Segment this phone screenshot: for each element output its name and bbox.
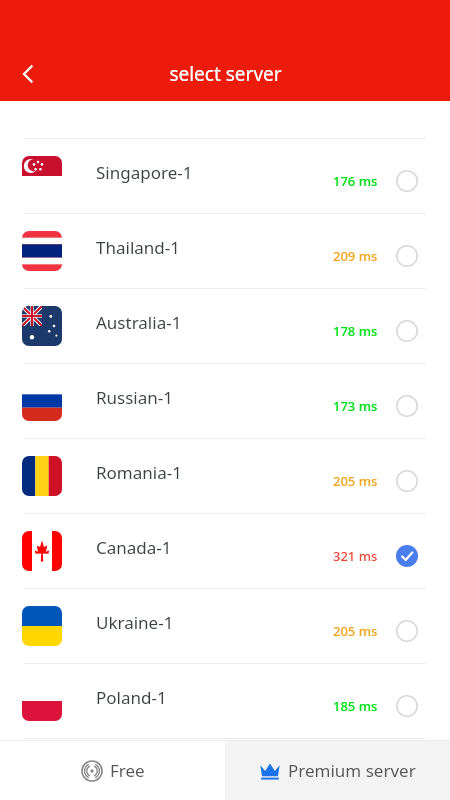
button[interactable]: Ukraine-1 bbox=[0, 589, 450, 663]
button[interactable]: Thailand-1 bbox=[0, 214, 450, 288]
staticText: Canada-1 bbox=[96, 536, 172, 559]
staticText: 321 ms bbox=[333, 547, 378, 565]
staticText: Free bbox=[110, 759, 145, 782]
staticText: select server bbox=[169, 61, 282, 87]
staticText: Thailand-1 bbox=[96, 236, 180, 259]
button[interactable]: Romania-1 bbox=[0, 439, 450, 513]
staticText: 176 ms bbox=[333, 172, 378, 190]
button[interactable]: Select Singapore-1 bbox=[390, 164, 424, 198]
staticText: Ukraine-1 bbox=[96, 611, 174, 634]
staticText: 209 ms bbox=[333, 247, 378, 265]
staticText: Singapore-1 bbox=[96, 161, 193, 184]
staticText: Romania-1 bbox=[96, 461, 182, 484]
button[interactable]: Select Russian-1 bbox=[390, 389, 424, 423]
button[interactable]: Select Korea-1 bbox=[390, 71, 424, 105]
staticText: 185 ms bbox=[333, 697, 378, 715]
staticText: Russian-1 bbox=[96, 386, 173, 409]
staticText: 178 ms bbox=[333, 322, 378, 340]
button[interactable]: Select Poland-1 bbox=[390, 689, 424, 723]
button[interactable]: Poland-1 bbox=[0, 664, 450, 738]
staticText: 173 ms bbox=[333, 397, 378, 415]
button[interactable]: Canada-1 bbox=[0, 514, 450, 588]
button[interactable]: Russian-1 bbox=[0, 364, 450, 438]
button[interactable]: Select Romania-1 bbox=[390, 464, 424, 498]
button[interactable]: Select Australia-1 bbox=[390, 314, 424, 348]
staticText: Premium server bbox=[288, 759, 416, 782]
staticText: 205 ms bbox=[333, 472, 378, 490]
staticText: 205 ms bbox=[333, 622, 378, 640]
button[interactable]: Selected bbox=[390, 539, 424, 573]
button[interactable]: Singapore-1 bbox=[0, 139, 450, 213]
staticText: Poland-1 bbox=[96, 686, 167, 709]
button[interactable]: Premium server bbox=[225, 741, 450, 800]
button[interactable]: Free bbox=[0, 741, 225, 800]
staticText: Australia-1 bbox=[96, 311, 182, 334]
button[interactable]: Australia-1 bbox=[0, 289, 450, 363]
button[interactable]: Back bbox=[6, 52, 50, 96]
button[interactable]: Select Ukraine-1 bbox=[390, 614, 424, 648]
button[interactable]: Select Thailand-1 bbox=[390, 239, 424, 273]
